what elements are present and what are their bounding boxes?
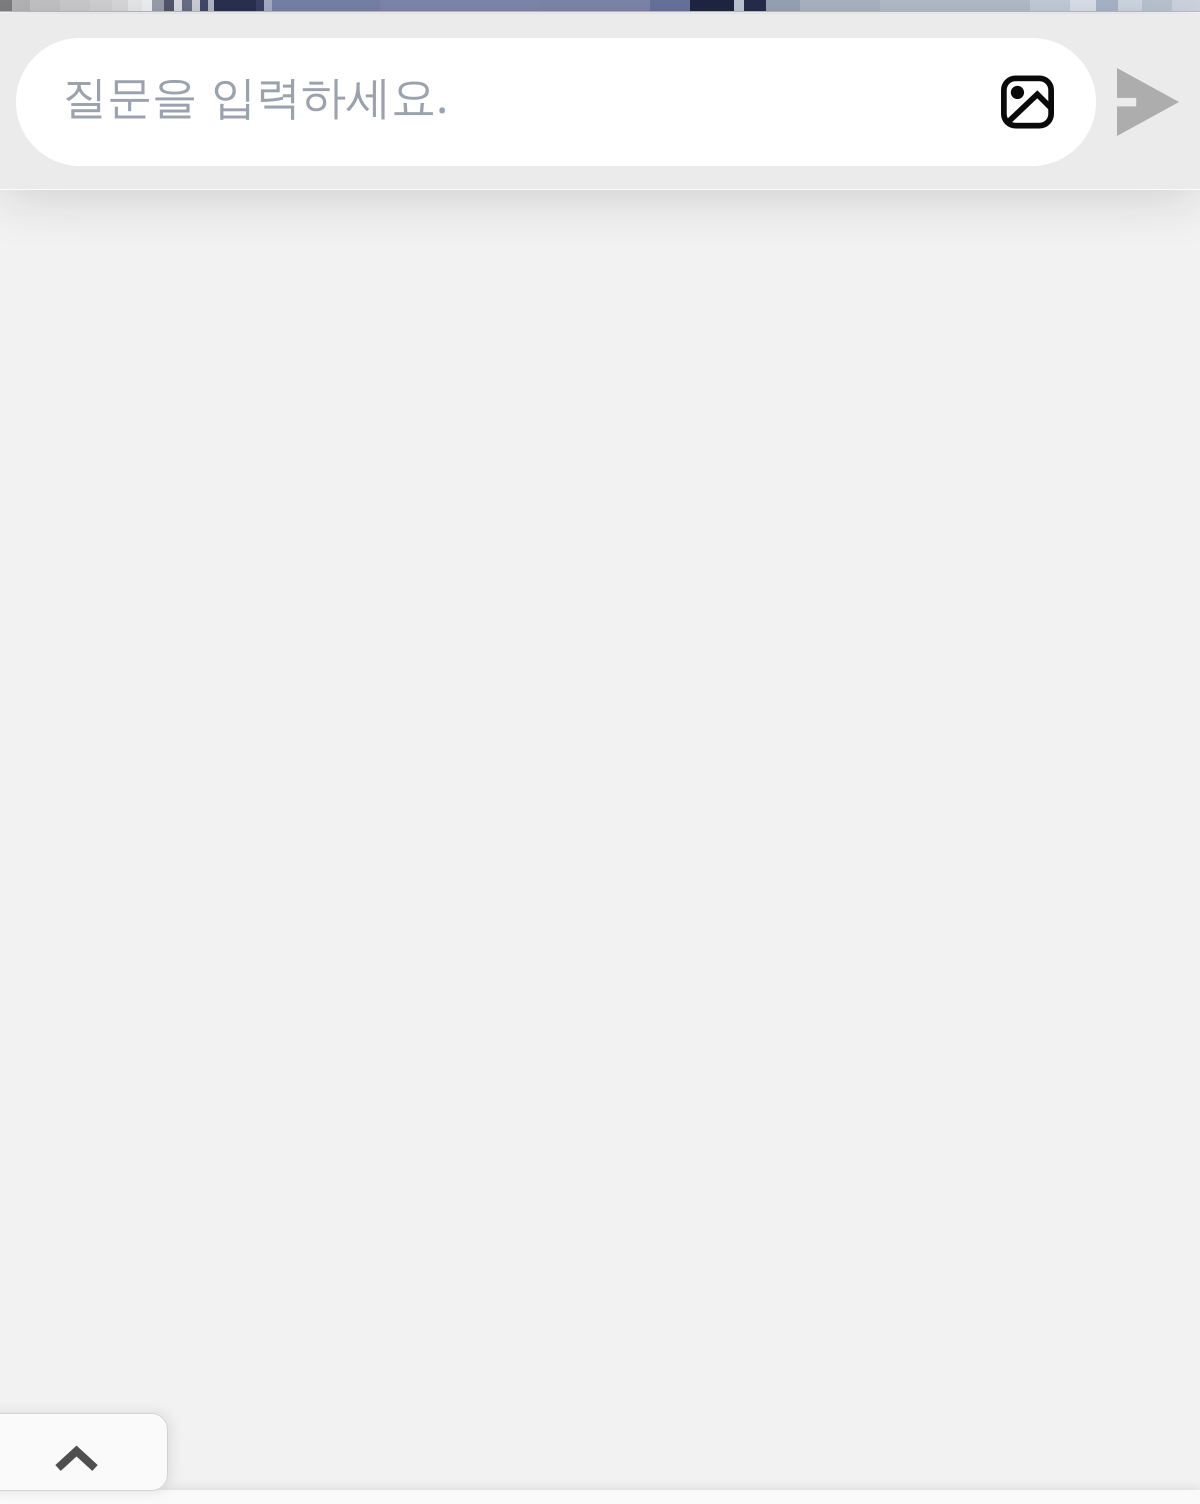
button[interactable]: Send (1096, 38, 1200, 166)
staticText: 질문을 입력하세요. (62, 66, 448, 126)
button[interactable]: 질문을 입력하세요. (16, 38, 1096, 166)
button[interactable]: Expand panel (0, 1413, 168, 1491)
